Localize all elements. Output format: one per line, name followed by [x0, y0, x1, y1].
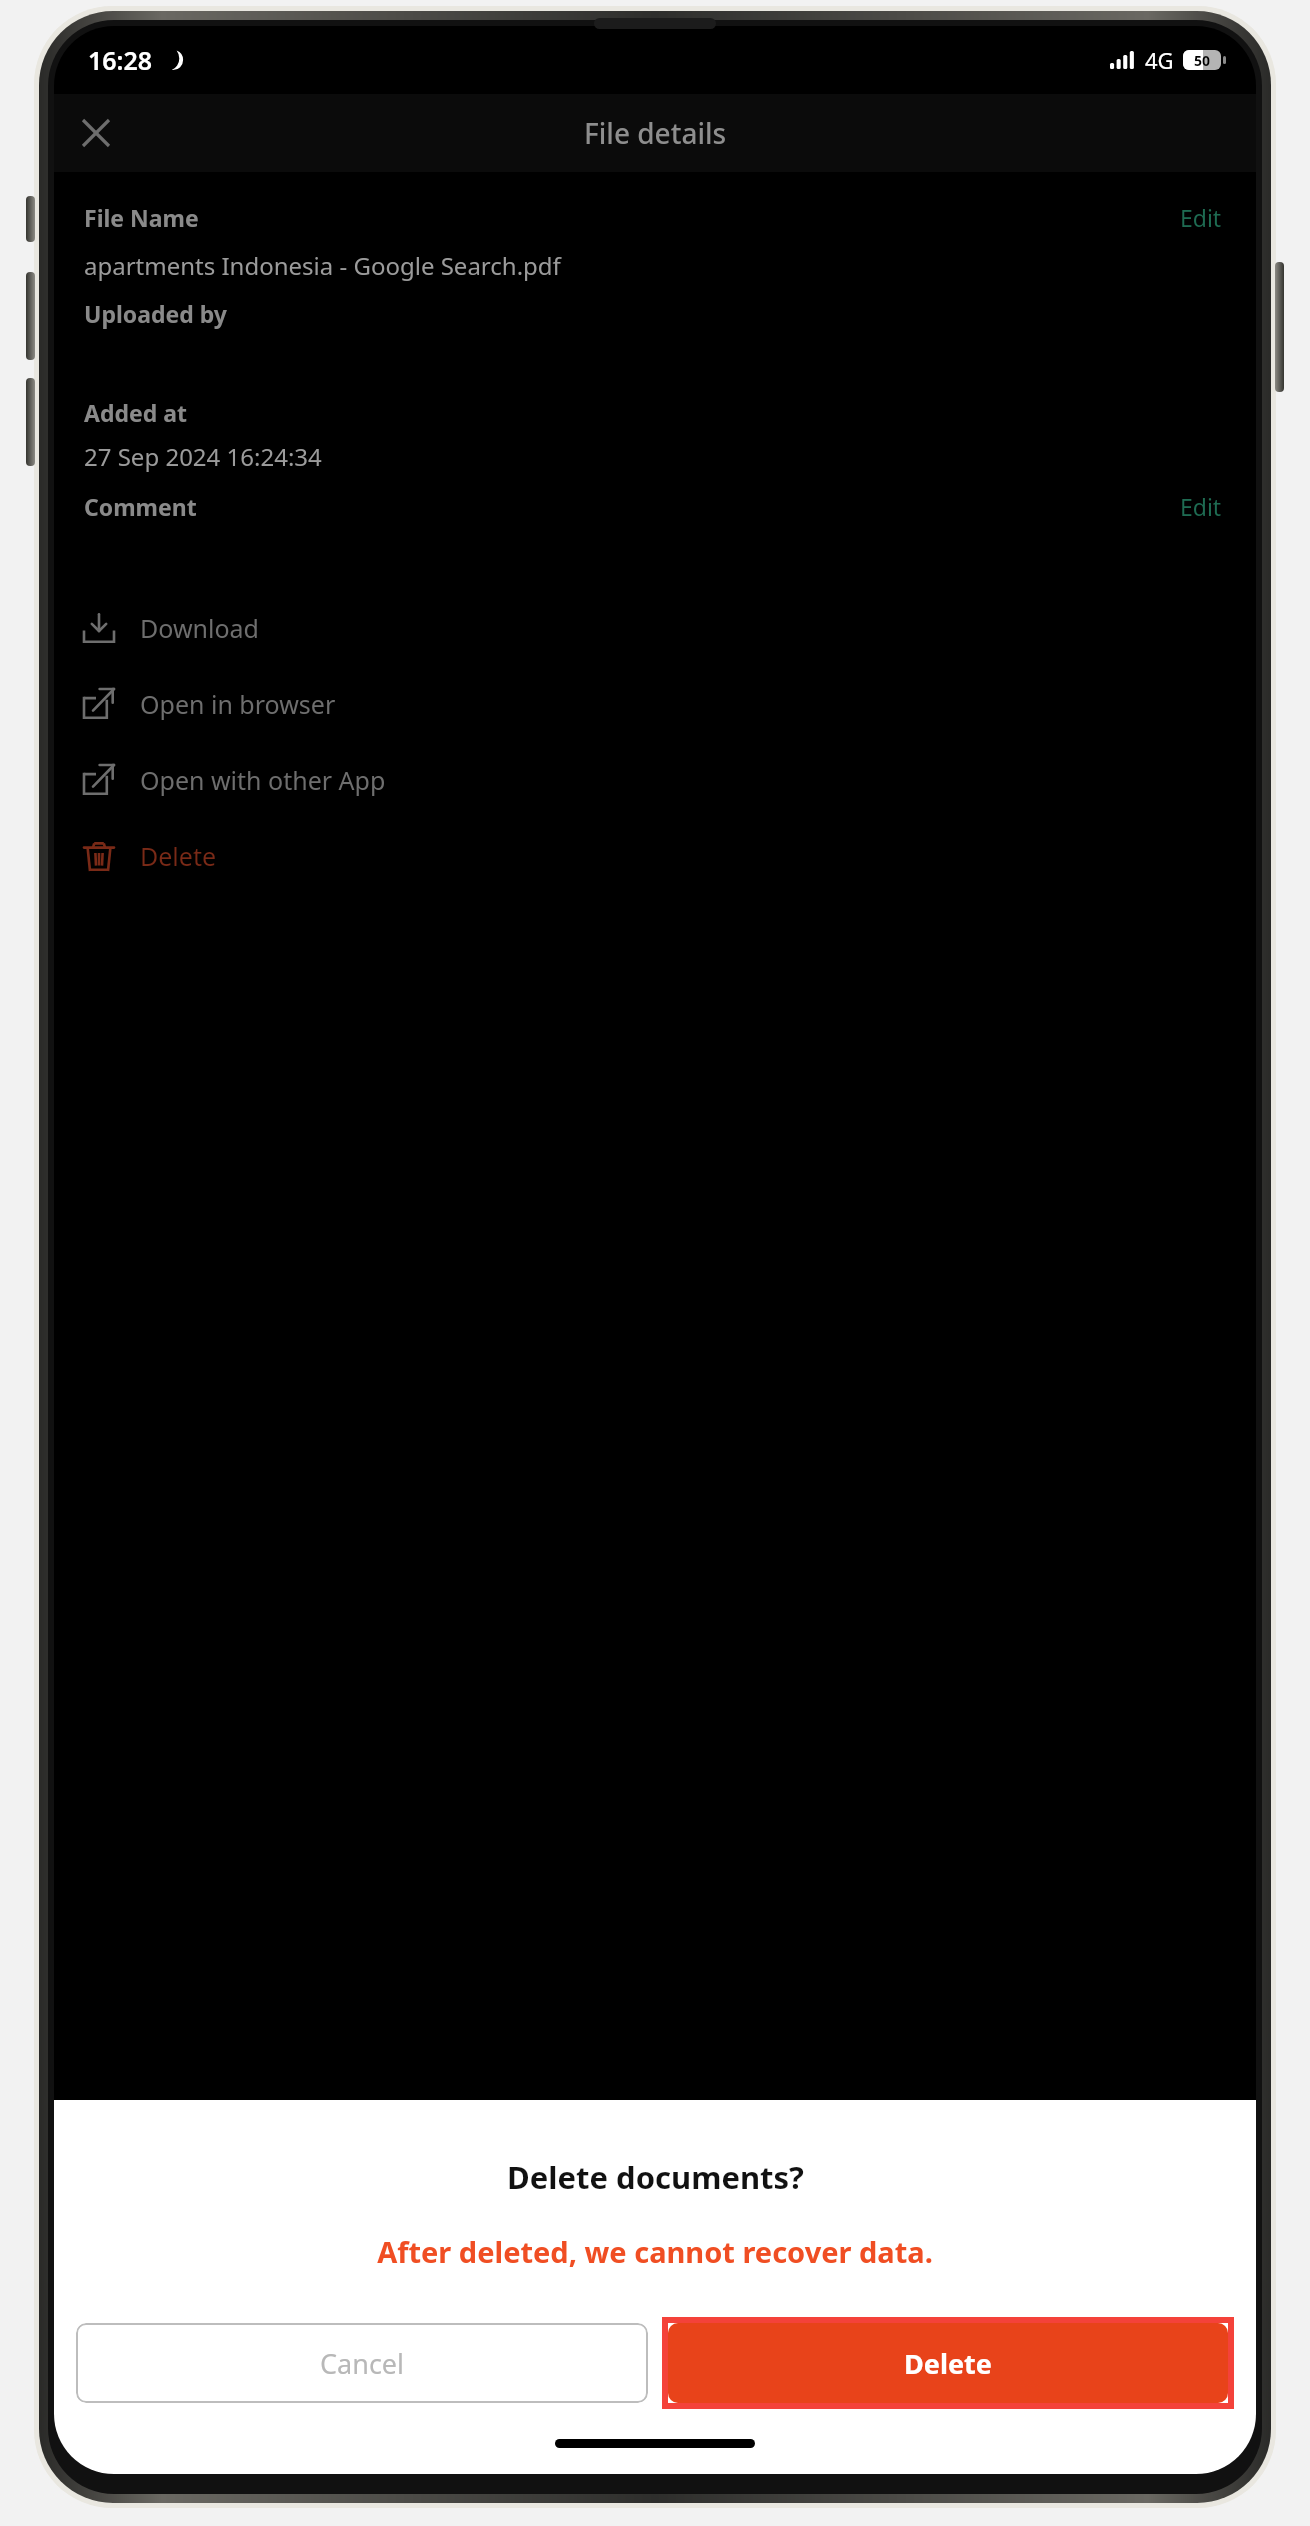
- button[interactable]: Delete: [54, 818, 1256, 894]
- staticText: Delete: [140, 839, 217, 873]
- staticText: After deleted, we cannot recover data.: [377, 2232, 933, 2271]
- staticText: Download: [140, 611, 259, 645]
- staticText: 50: [1194, 51, 1211, 70]
- button[interactable]: Close: [68, 105, 124, 161]
- button[interactable]: Edit: [1176, 198, 1226, 237]
- staticText: Comment: [84, 491, 197, 522]
- staticText: Edit: [1180, 202, 1222, 233]
- staticText: Delete documents?: [507, 2156, 804, 2198]
- staticText: Uploaded by: [84, 298, 227, 329]
- staticText: Added at: [84, 397, 187, 428]
- staticText: File Name: [84, 202, 199, 233]
- staticText: Edit: [1180, 491, 1222, 522]
- staticText: Delete: [904, 2345, 992, 2382]
- staticText: Open in browser: [140, 687, 336, 721]
- staticText: apartments Indonesia - Google Search.pdf: [84, 249, 561, 282]
- staticText: 4G: [1145, 45, 1174, 75]
- button[interactable]: Edit: [1176, 487, 1226, 526]
- staticText: 16:28: [88, 43, 153, 77]
- staticText: Open with other App: [140, 763, 386, 797]
- button[interactable]: Download: [54, 590, 1256, 666]
- button[interactable]: Open with other App: [54, 742, 1256, 818]
- staticText: 27 Sep 2024 16:24:34: [84, 440, 322, 473]
- button[interactable]: Open in browser: [54, 666, 1256, 742]
- button[interactable]: Cancel: [76, 2323, 648, 2403]
- button[interactable]: Delete: [668, 2323, 1228, 2403]
- staticText: File details: [584, 114, 727, 152]
- staticText: Cancel: [320, 2345, 405, 2382]
